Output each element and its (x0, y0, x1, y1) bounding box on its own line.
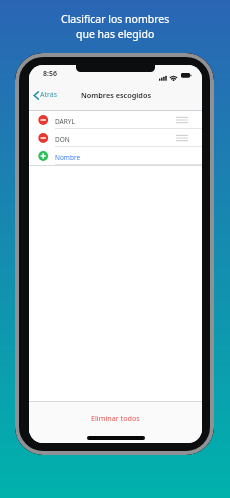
staticText: DARYL (55, 117, 75, 126)
staticText: que has elegido (76, 27, 155, 41)
button[interactable]: Eliminar todos (91, 413, 140, 423)
button[interactable]: Nombre (29, 147, 202, 165)
button[interactable]: DON (29, 129, 202, 147)
staticText: Clasificar los nombres (61, 12, 170, 26)
staticText: Nombres escogidos (81, 90, 151, 100)
staticText: Nombre (55, 153, 81, 162)
staticText: Eliminar todos (91, 413, 140, 423)
button[interactable]: DARYL (29, 111, 202, 129)
staticText: Atrás (40, 90, 58, 100)
staticText: 8:56 (43, 69, 57, 79)
staticText: DON (55, 135, 70, 144)
button[interactable]: Atrás (33, 90, 58, 100)
